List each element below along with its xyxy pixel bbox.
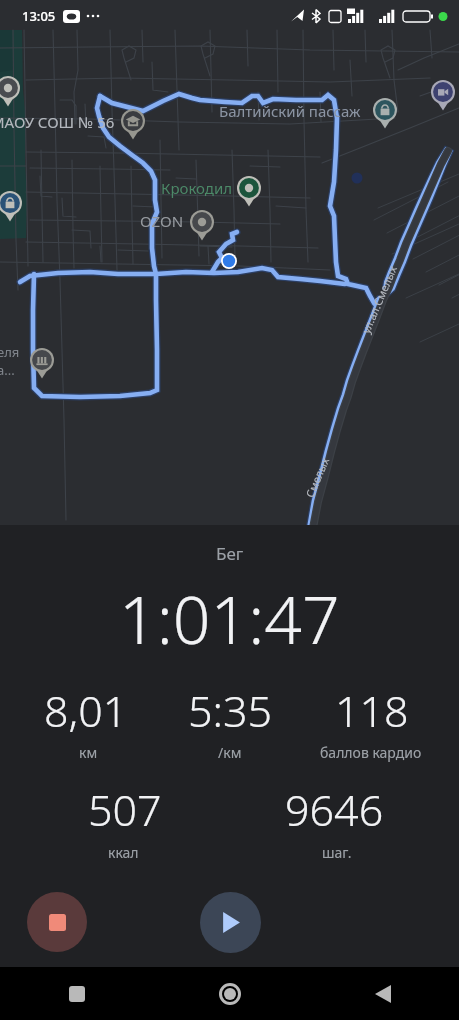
staticText: 13:05 <box>22 7 56 25</box>
staticText: 118 <box>335 681 409 740</box>
staticText: 5:35 <box>188 681 273 740</box>
staticText: 507 <box>88 780 162 839</box>
button[interactable]: Stop workout <box>27 892 87 952</box>
staticText: Крокодил <box>161 178 233 198</box>
staticText: км <box>79 743 98 762</box>
button[interactable]: Resume workout <box>200 892 261 953</box>
staticText: /км <box>218 743 242 762</box>
staticText: Балтийский пассаж <box>219 101 361 121</box>
staticText: ккал <box>108 843 139 862</box>
button[interactable]: Back <box>306 967 459 1020</box>
staticText: а... <box>0 361 15 379</box>
staticText: 1:01:47 <box>119 573 340 663</box>
staticText: Смелых <box>302 455 332 500</box>
staticText: 8,01 <box>44 681 128 740</box>
staticText: еля <box>0 343 20 361</box>
button[interactable]: Home <box>153 967 306 1020</box>
staticText: шаг. <box>322 843 352 862</box>
staticText: баллов кардио <box>320 743 422 762</box>
staticText: Бег <box>216 542 244 565</box>
staticText: ул.ал.Смелых <box>358 263 400 335</box>
staticText: МАОУ СОШ № 56 <box>0 112 115 132</box>
staticText: 9646 <box>285 780 384 839</box>
staticText: OZON <box>140 211 184 231</box>
button[interactable]: Recent apps <box>0 967 153 1020</box>
